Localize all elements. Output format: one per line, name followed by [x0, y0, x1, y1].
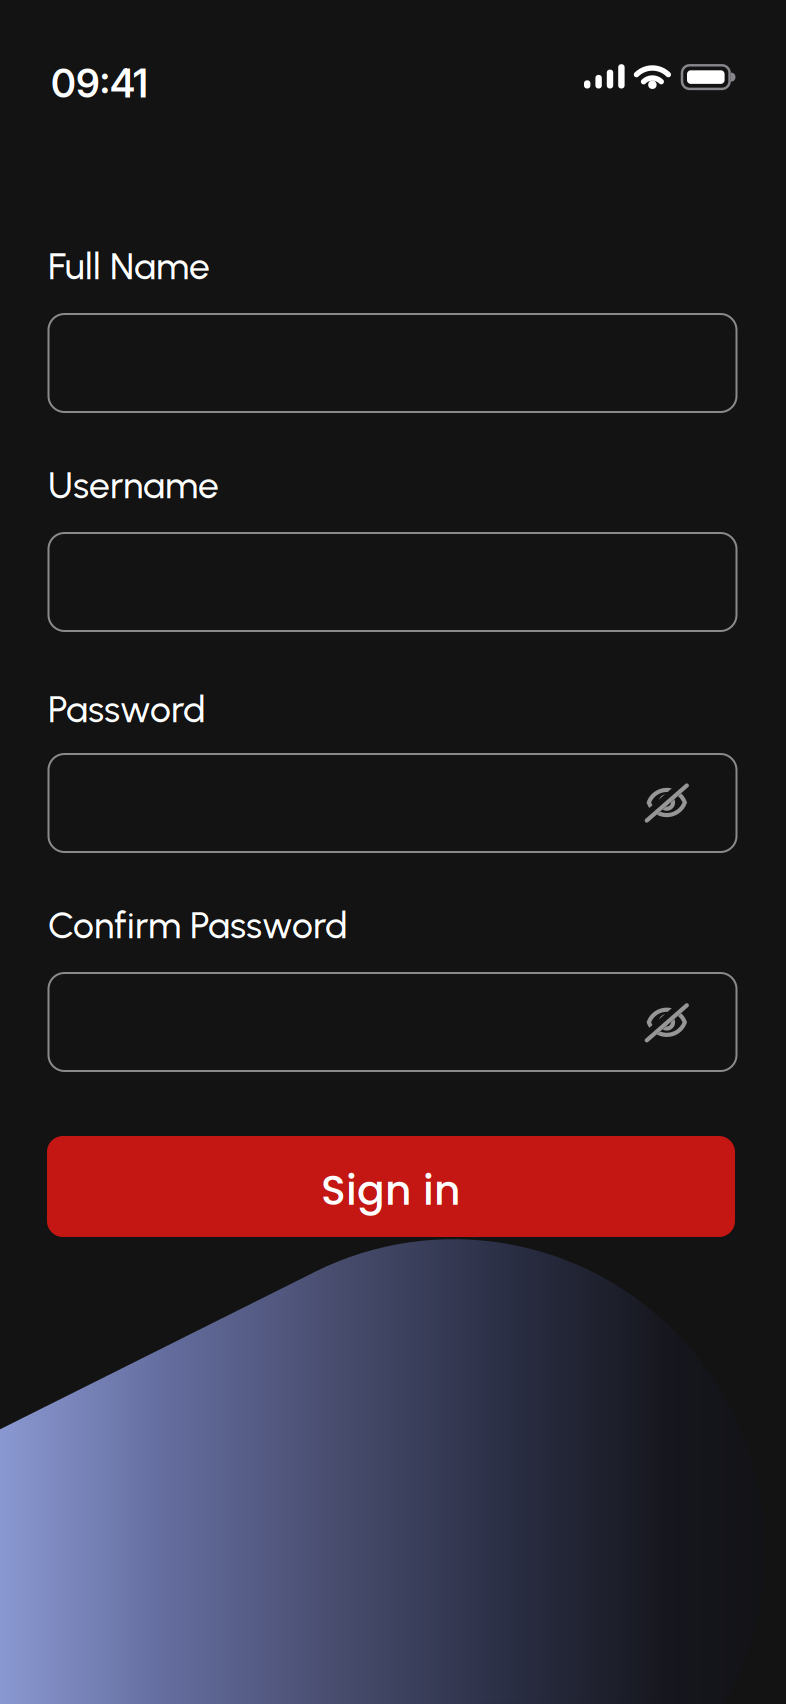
button[interactable]: Show confirm password — [641, 998, 693, 1046]
button[interactable]: Sign in — [47, 1136, 735, 1237]
staticText: 09:41 — [51, 60, 148, 107]
staticText: Full Name — [48, 244, 210, 289]
staticText: Username — [48, 463, 219, 508]
button[interactable]: Full Name — [48, 314, 736, 412]
button[interactable]: Password — [48, 754, 736, 852]
staticText: Password — [48, 687, 206, 732]
button[interactable]: Show password — [641, 778, 693, 826]
button[interactable]: Username — [48, 533, 736, 631]
staticText: Sign in — [321, 1162, 461, 1219]
staticText: Confirm Password — [48, 903, 348, 948]
button[interactable]: Confirm Password — [48, 973, 736, 1071]
